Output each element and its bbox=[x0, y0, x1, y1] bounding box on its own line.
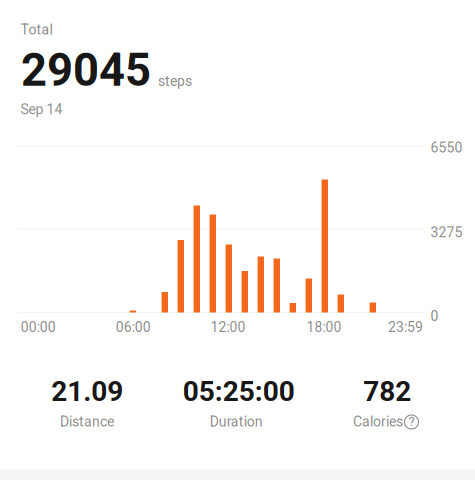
button[interactable]: 782 bbox=[312, 372, 462, 430]
staticText: ? bbox=[408, 414, 414, 429]
staticText: steps bbox=[158, 73, 192, 89]
staticText: 05:25:00 bbox=[183, 375, 295, 408]
staticText: Calories bbox=[353, 414, 403, 430]
staticText: Sep 14 bbox=[20, 101, 62, 118]
staticText: 3275 bbox=[430, 224, 462, 241]
staticText: 29045 bbox=[21, 44, 151, 97]
staticText: Total bbox=[20, 21, 52, 38]
staticText: 18:00 bbox=[306, 319, 341, 335]
button[interactable]: 21.09 bbox=[13, 372, 163, 430]
staticText: 12:00 bbox=[210, 319, 245, 335]
staticText: 23:59 bbox=[388, 319, 423, 335]
staticText: 21.09 bbox=[51, 375, 123, 408]
staticText: 06:00 bbox=[116, 319, 151, 335]
staticText: 782 bbox=[363, 375, 411, 408]
staticText: Duration bbox=[210, 414, 263, 430]
staticText: 6550 bbox=[430, 139, 462, 156]
staticText: Distance bbox=[60, 414, 114, 430]
button[interactable]: 05:25:00 bbox=[163, 372, 312, 430]
staticText: 00:00 bbox=[21, 319, 56, 335]
button[interactable]: About calories bbox=[404, 415, 418, 429]
staticText: 0 bbox=[430, 308, 438, 324]
